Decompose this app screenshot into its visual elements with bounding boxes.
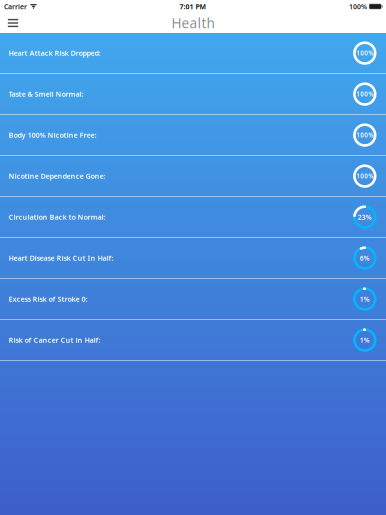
staticText: 100% — [349, 2, 367, 11]
staticText: Taste & Smell Normal: — [8, 89, 83, 99]
staticText: 100% — [356, 131, 373, 139]
button[interactable]: Taste & Smell Normal: — [0, 74, 386, 114]
staticText: 100% — [356, 49, 373, 57]
staticText: Heart Attack Risk Dropped: — [8, 48, 100, 58]
staticText: Risk of Cancer Cut in Half: — [8, 335, 100, 345]
staticText: 23% — [358, 213, 372, 222]
staticText: 100% — [356, 172, 373, 180]
staticText: Carrier — [4, 2, 27, 11]
staticText: Body 100% Nicotine Free: — [8, 130, 96, 140]
button[interactable]: Risk of Cancer Cut in Half: — [0, 320, 386, 360]
button[interactable]: Heart Disease Risk Cut In Half: — [0, 238, 386, 278]
staticText: Heart Disease Risk Cut In Half: — [8, 253, 113, 263]
button[interactable]: Circulation Back to Normal: — [0, 197, 386, 237]
staticText: 6% — [360, 254, 370, 263]
staticText: 1% — [360, 336, 370, 345]
button[interactable]: Body 100% Nicotine Free: — [0, 115, 386, 155]
staticText: 1% — [360, 295, 370, 304]
staticText: Excess Risk of Stroke 0: — [8, 294, 87, 304]
staticText: 100% — [356, 90, 373, 98]
staticText: Health — [171, 14, 214, 32]
staticText: 7:01 PM — [179, 2, 206, 11]
button[interactable]: Menu — [0, 13, 26, 33]
staticText: Circulation Back to Normal: — [8, 212, 105, 222]
button[interactable]: Heart Attack Risk Dropped: — [0, 33, 386, 73]
button[interactable]: Excess Risk of Stroke 0: — [0, 279, 386, 319]
staticText: Nicotine Dependence Gone: — [8, 171, 105, 181]
button[interactable]: Nicotine Dependence Gone: — [0, 156, 386, 196]
